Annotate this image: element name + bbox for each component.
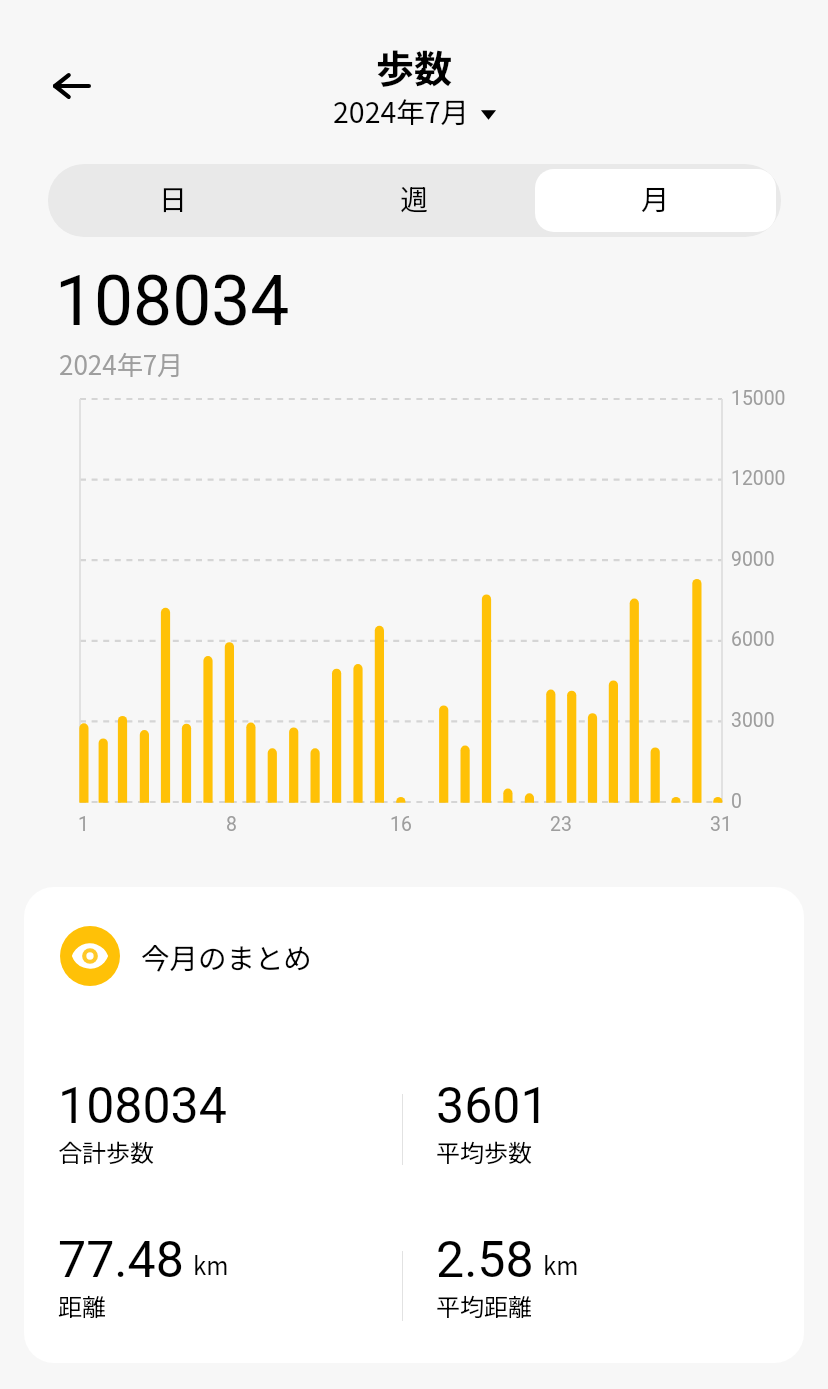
staticText: 108034 (58, 1077, 227, 1136)
staticText: 0 (731, 790, 742, 813)
staticText: 日 (159, 178, 188, 219)
button[interactable]: 日 (53, 169, 294, 232)
staticText: 31 (710, 813, 732, 836)
staticText: 2024年7月 (59, 345, 184, 383)
button[interactable]: 今月のまとめ (60, 926, 313, 986)
staticText: 8 (226, 813, 237, 836)
staticText: 23 (550, 813, 572, 836)
staticText: 108034 (55, 261, 290, 342)
staticText: 3601 (436, 1077, 549, 1136)
staticText: 77.48 (58, 1231, 184, 1290)
staticText: 今月のまとめ (141, 936, 313, 977)
staticText: 16 (390, 813, 412, 836)
button[interactable]: 週 (294, 169, 535, 232)
staticText: km (543, 1247, 579, 1282)
staticText: km (193, 1247, 229, 1282)
staticText: 15000 (731, 387, 786, 410)
staticText: 3000 (731, 709, 775, 732)
staticText: 週 (400, 178, 429, 219)
staticText: 歩数 (376, 39, 453, 94)
staticText: 2.58 (436, 1231, 534, 1290)
button[interactable]: Back (32, 46, 112, 126)
staticText: 距離 (58, 1288, 106, 1323)
button[interactable]: 月 (535, 169, 776, 232)
staticText: 2024年7月 (333, 90, 470, 131)
staticText: 平均距離 (436, 1288, 532, 1323)
staticText: 9000 (731, 548, 775, 571)
staticText: 6000 (731, 628, 775, 651)
staticText: 合計歩数 (58, 1134, 154, 1169)
staticText: 月 (641, 178, 670, 219)
staticText: 1 (78, 813, 89, 836)
staticText: 12000 (731, 467, 786, 490)
staticText: 平均歩数 (436, 1134, 532, 1169)
button[interactable]: 2024年7月 (329, 90, 500, 131)
